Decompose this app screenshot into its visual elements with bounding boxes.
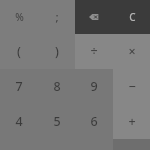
button[interactable]: − <box>113 69 150 104</box>
staticText: 8 <box>53 78 61 95</box>
button[interactable]: Backspace <box>75 0 113 34</box>
staticText: + <box>128 113 136 130</box>
staticText: C <box>129 10 136 24</box>
button[interactable]: + <box>113 104 150 139</box>
button[interactable]: 8 <box>38 69 76 104</box>
button[interactable]: C <box>113 0 150 34</box>
staticText: ) <box>55 43 59 60</box>
button[interactable]: 7 <box>0 69 38 104</box>
staticText: % <box>15 10 24 24</box>
staticText: − <box>128 78 136 95</box>
staticText: 5 <box>53 113 61 130</box>
staticText: ; <box>55 9 59 25</box>
button[interactable]: 4 <box>0 104 38 139</box>
button[interactable]: ÷ <box>75 34 113 69</box>
staticText: ÷ <box>90 43 98 60</box>
button[interactable]: 5 <box>38 104 76 139</box>
staticText: ( <box>17 43 21 60</box>
button[interactable]: % <box>0 0 38 34</box>
button[interactable]: 6 <box>75 104 113 139</box>
button[interactable]: ) <box>38 34 76 69</box>
staticText: 4 <box>15 113 23 130</box>
staticText: 9 <box>90 78 98 95</box>
staticText: 6 <box>90 113 98 130</box>
button[interactable]: × <box>113 34 150 69</box>
button[interactable]: ; <box>38 0 76 34</box>
button[interactable]: 9 <box>75 69 113 104</box>
staticText: × <box>128 43 136 60</box>
button[interactable]: ( <box>0 34 38 69</box>
staticText: 7 <box>15 78 23 95</box>
